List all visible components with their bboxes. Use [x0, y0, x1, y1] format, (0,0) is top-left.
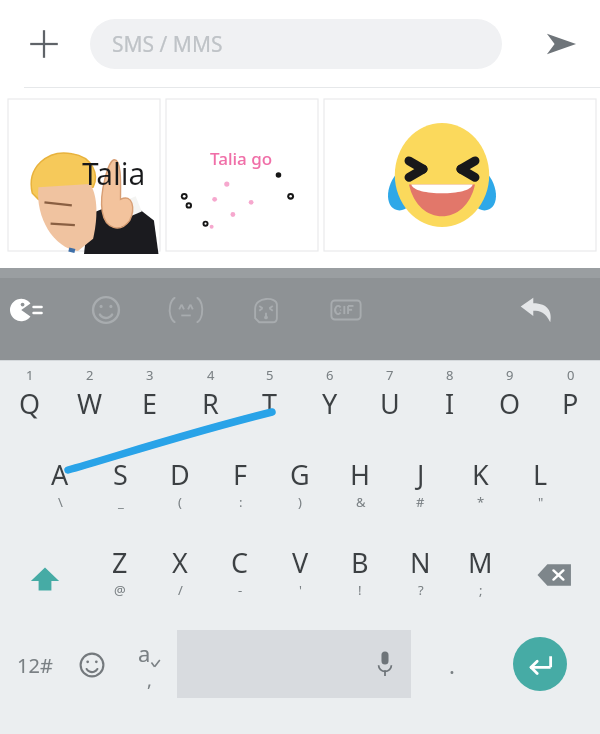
staticText: 5: [266, 366, 274, 384]
staticText: ,: [147, 668, 152, 693]
staticText: ?: [418, 581, 424, 599]
staticText: _: [118, 493, 124, 511]
button[interactable]: S: [90, 454, 150, 530]
button[interactable]: H: [330, 454, 390, 530]
staticText: A: [51, 456, 69, 493]
button[interactable]: 12#: [4, 634, 66, 696]
staticText: F: [233, 456, 248, 493]
staticText: N: [410, 544, 431, 581]
staticText: *: [477, 493, 485, 511]
staticText: ": [538, 493, 544, 511]
staticText: \: [58, 493, 63, 511]
staticText: 2: [86, 366, 94, 384]
staticText: #: [416, 493, 425, 511]
staticText: Talia go: [210, 147, 273, 170]
staticText: !: [358, 581, 362, 599]
button[interactable]: 0: [540, 362, 600, 438]
button[interactable]: Back: [512, 286, 560, 334]
button[interactable]: Z: [90, 542, 150, 616]
staticText: Y: [322, 385, 338, 422]
button[interactable]: X: [150, 542, 210, 616]
staticText: R: [202, 385, 219, 422]
staticText: U: [380, 385, 400, 422]
staticText: &: [356, 493, 366, 511]
staticText: Z: [112, 544, 128, 581]
button[interactable]: K: [450, 454, 510, 530]
button[interactable]: Sticker suggestion: [8, 99, 160, 251]
button[interactable]: 1: [0, 362, 60, 438]
button[interactable]: V: [270, 542, 330, 616]
button[interactable]: .: [424, 634, 480, 696]
button[interactable]: 9: [480, 362, 540, 438]
button[interactable]: Emoji: [82, 286, 130, 334]
staticText: B: [351, 544, 369, 581]
button[interactable]: Shift: [14, 546, 76, 612]
staticText: O: [499, 385, 521, 422]
button[interactable]: 4: [180, 362, 240, 438]
button[interactable]: B: [330, 542, 390, 616]
staticText: ': [299, 581, 302, 599]
staticText: -: [238, 581, 243, 599]
staticText: E: [142, 385, 158, 422]
staticText: M: [468, 544, 493, 581]
button[interactable]: Backspace: [524, 546, 586, 608]
staticText: G: [290, 456, 310, 493]
button[interactable]: G: [270, 454, 330, 530]
button[interactable]: GIF: [322, 286, 370, 334]
button[interactable]: Sticker suggestion: [324, 99, 596, 251]
button[interactable]: 7: [360, 362, 420, 438]
staticText: P: [562, 385, 579, 422]
button[interactable]: Stickers pack: [242, 286, 290, 334]
button[interactable]: N: [390, 542, 450, 616]
button[interactable]: Space: [177, 630, 411, 698]
button[interactable]: D: [150, 454, 210, 530]
button[interactable]: M: [450, 542, 510, 616]
button[interactable]: Add attachment: [16, 16, 72, 72]
staticText: 3: [146, 366, 154, 384]
staticText: ;: [479, 581, 483, 599]
button[interactable]: F: [210, 454, 270, 530]
staticText: 4: [207, 366, 215, 384]
button[interactable]: L: [510, 454, 570, 530]
staticText: I: [445, 385, 455, 422]
button[interactable]: 6: [300, 362, 360, 438]
staticText: V: [292, 544, 309, 581]
staticText: a: [138, 638, 151, 668]
staticText: 1: [26, 366, 34, 384]
staticText: (: [178, 493, 182, 511]
staticText: H: [350, 456, 371, 493]
staticText: SMS / MMS: [112, 30, 223, 59]
staticText: S: [113, 456, 128, 493]
staticText: 8: [446, 366, 454, 384]
staticText: 9: [506, 366, 514, 384]
button[interactable]: J: [390, 454, 450, 530]
staticText: W: [77, 385, 103, 422]
button[interactable]: SMS / MMS: [90, 19, 502, 69]
button[interactable]: Stickers: [2, 286, 50, 334]
button[interactable]: Enter: [513, 637, 567, 691]
staticText: Q: [19, 385, 41, 422]
button[interactable]: 8: [420, 362, 480, 438]
button[interactable]: Emoji: [62, 634, 122, 696]
staticText: 7: [386, 366, 394, 384]
staticText: :: [239, 493, 243, 511]
staticText: @: [114, 581, 126, 599]
staticText: 0: [567, 366, 575, 384]
button[interactable]: 3: [120, 362, 180, 438]
staticText: 6: [326, 366, 334, 384]
button[interactable]: Emoticons: [162, 286, 210, 334]
staticText: /: [178, 581, 183, 599]
button[interactable]: C: [210, 542, 270, 616]
staticText: X: [172, 544, 188, 581]
button[interactable]: 2: [60, 362, 120, 438]
staticText: T: [262, 385, 278, 422]
staticText: Talia: [82, 153, 146, 194]
button[interactable]: Sticker suggestion: [166, 99, 318, 251]
button[interactable]: A: [30, 454, 90, 530]
staticText: 12#: [17, 652, 53, 679]
button[interactable]: 5: [240, 362, 300, 438]
staticText: ): [298, 493, 302, 511]
button[interactable]: Send: [534, 17, 588, 71]
button[interactable]: Language and spell check: [122, 634, 176, 696]
staticText: D: [170, 456, 190, 493]
